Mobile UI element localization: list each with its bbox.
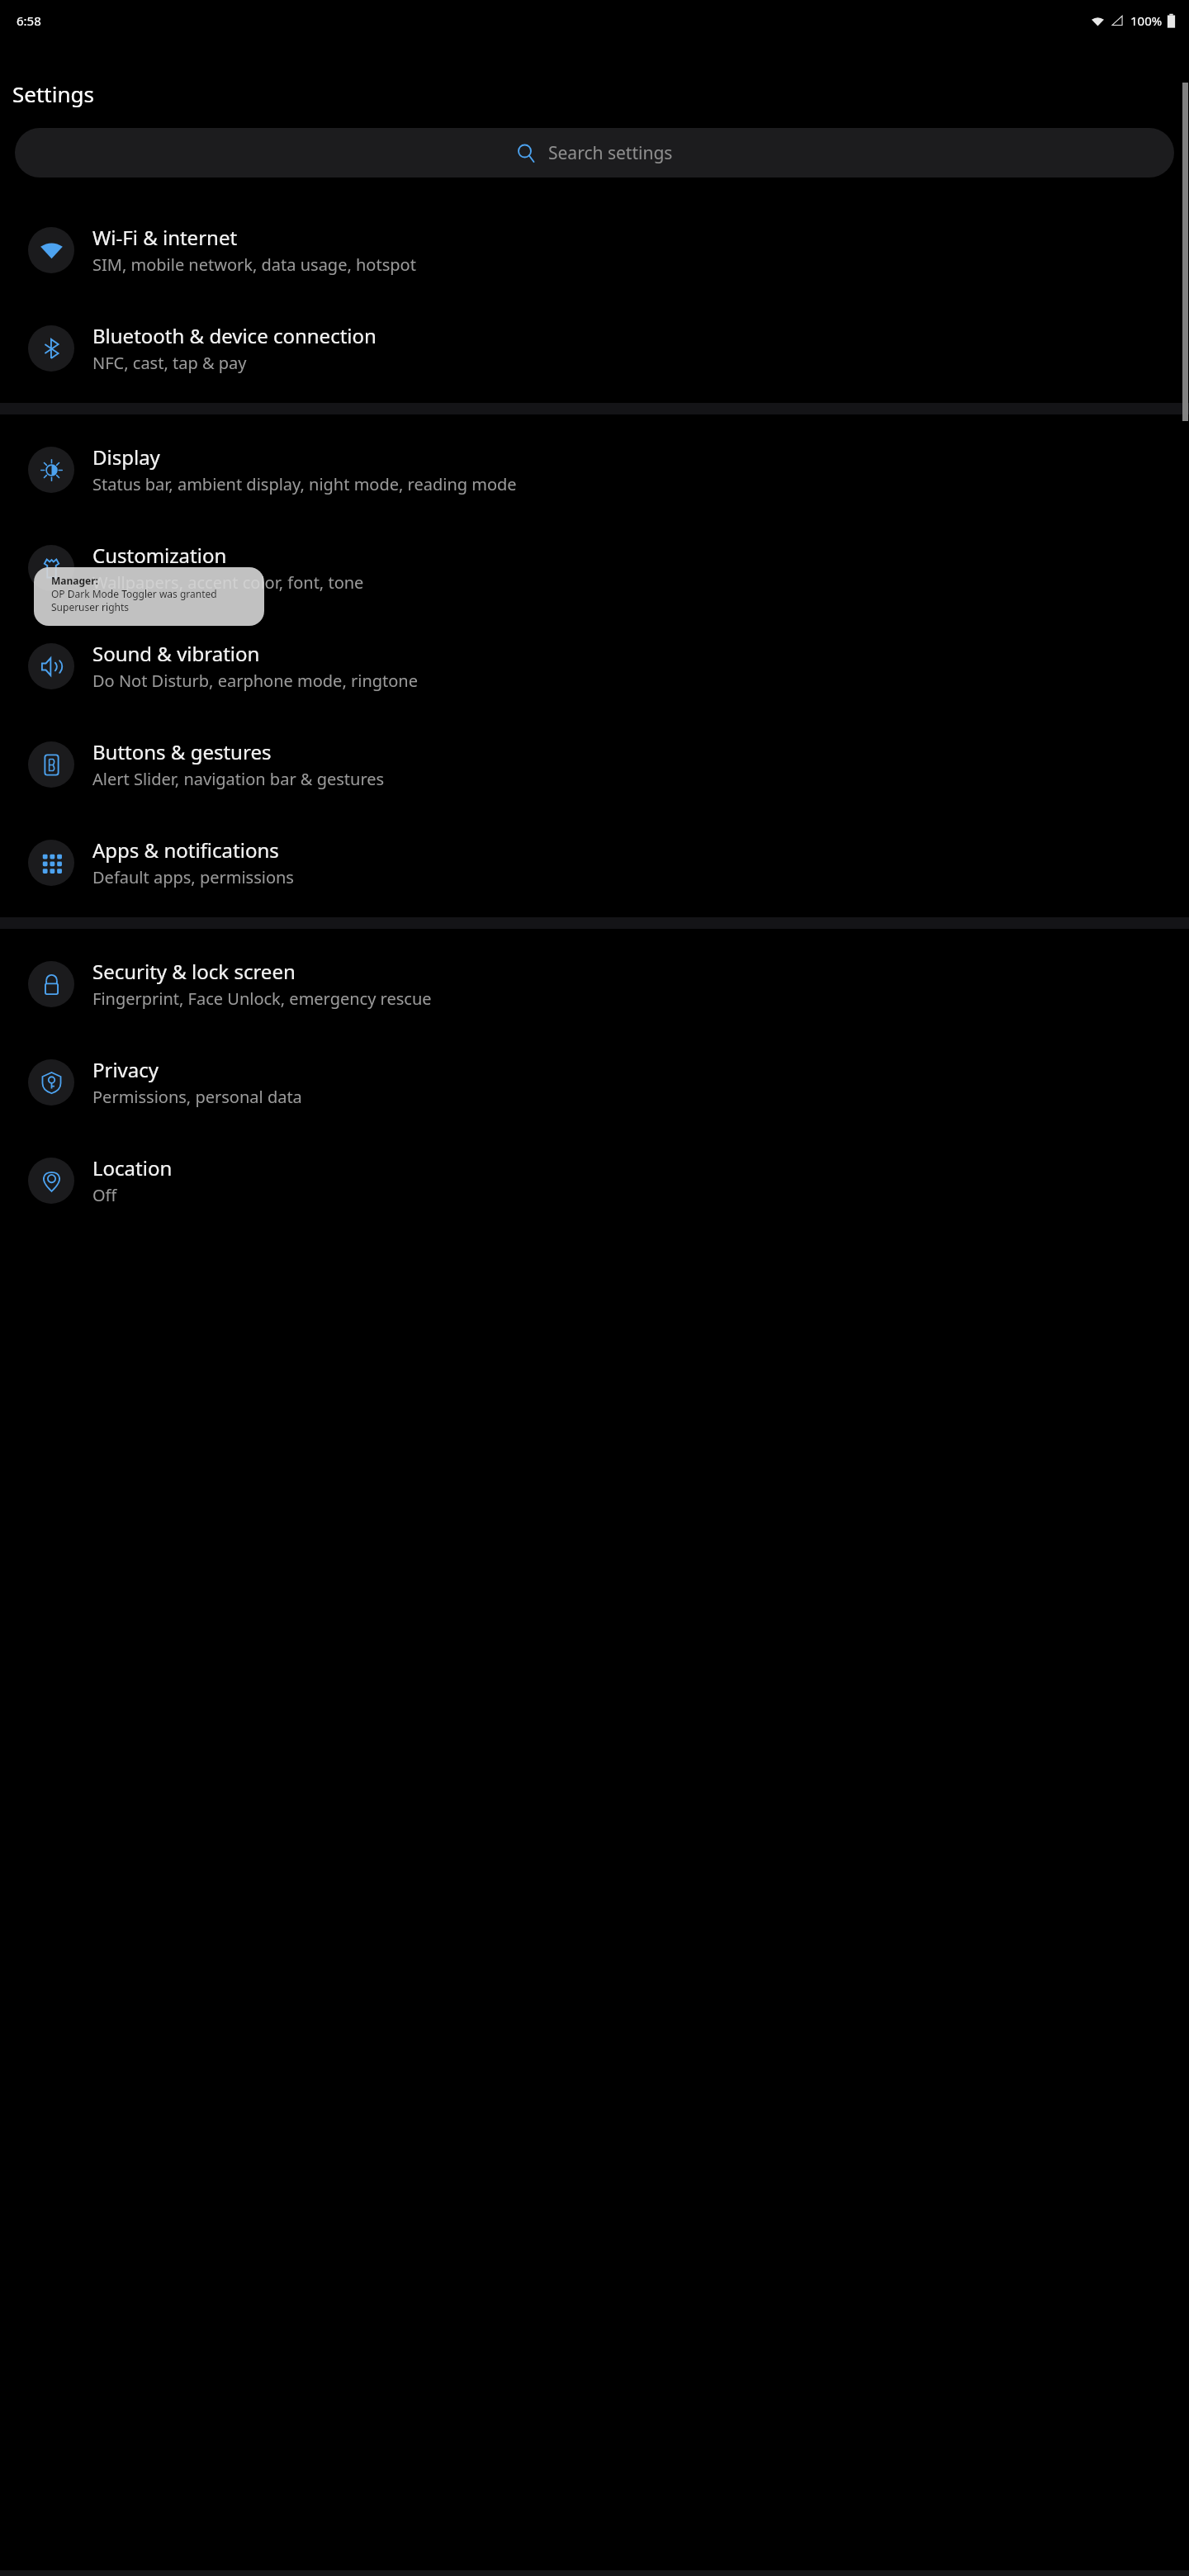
button[interactable]: Location [0, 1131, 1189, 1229]
staticText: Superuser rights [51, 600, 130, 613]
button[interactable]: Sound & vibration [0, 617, 1189, 715]
staticText: Default apps, permissions [92, 866, 294, 888]
staticText: Wi-Fi & internet [92, 224, 238, 251]
staticText: 6:58 [17, 12, 41, 29]
staticText: Status bar, ambient display, night mode,… [92, 473, 517, 495]
button[interactable]: Privacy [0, 1033, 1189, 1131]
staticText: 100% [1130, 12, 1163, 29]
staticText: Off [92, 1184, 117, 1206]
button[interactable]: Apps & notifications [0, 813, 1189, 912]
staticText: Security & lock screen [92, 958, 296, 985]
staticText: Location [92, 1154, 173, 1181]
staticText: Privacy [92, 1056, 159, 1083]
staticText: Sound & vibration [92, 640, 260, 667]
button[interactable]: Bluetooth & device connection [0, 299, 1189, 397]
staticText: Permissions, personal data [92, 1086, 302, 1108]
staticText: Bluetooth & device connection [92, 322, 377, 349]
staticText: Alert Slider, navigation bar & gestures [92, 768, 385, 790]
staticText: Customization [92, 542, 227, 569]
button[interactable]: Display [0, 420, 1189, 519]
staticText: Settings [12, 79, 94, 108]
button[interactable]: Manager: [34, 567, 264, 626]
staticText: Fingerprint, Face Unlock, emergency resc… [92, 987, 432, 1010]
button[interactable]: Wi-Fi & internet [0, 201, 1189, 299]
staticText: Manager: [51, 574, 98, 587]
staticText: NFC, cast, tap & pay [92, 352, 247, 374]
staticText: Search settings [548, 141, 673, 165]
staticText: OP Dark Mode Toggler was granted [51, 587, 217, 600]
button[interactable]: Buttons & gestures [0, 715, 1189, 813]
staticText: Display [92, 443, 160, 471]
staticText: Apps & notifications [92, 836, 279, 864]
staticText: Wallpapers, accent color, font, tone [92, 571, 364, 594]
button[interactable]: Customization [0, 519, 1189, 617]
staticText: Do Not Disturb, earphone mode, ringtone [92, 670, 418, 692]
staticText: Buttons & gestures [92, 738, 272, 765]
staticText: SIM, mobile network, data usage, hotspot [92, 253, 416, 276]
button[interactable]: Security & lock screen [0, 935, 1189, 1033]
button[interactable]: Search settings [15, 128, 1174, 178]
